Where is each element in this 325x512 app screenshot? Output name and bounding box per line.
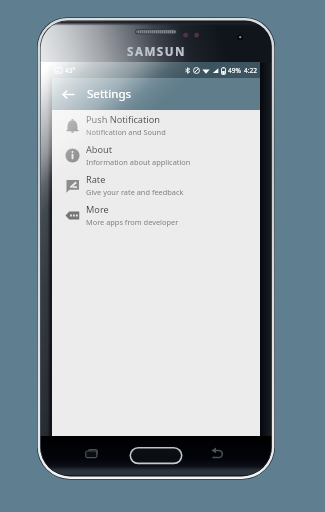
button[interactable]: Rate bbox=[52, 170, 260, 200]
button[interactable]: More bbox=[52, 200, 260, 230]
staticText: Push Notification bbox=[86, 113, 160, 126]
staticText: More apps from developer bbox=[86, 217, 179, 227]
button[interactable]: Back bbox=[56, 82, 80, 106]
staticText: SAMSUNG bbox=[127, 44, 188, 58]
button[interactable]: Push Notification bbox=[52, 110, 260, 140]
staticText: Notification and Sound bbox=[86, 127, 166, 137]
staticText: Rate bbox=[86, 173, 106, 186]
staticText: Information about application bbox=[86, 157, 191, 167]
button[interactable]: About bbox=[52, 140, 260, 170]
staticText: 43° bbox=[65, 66, 76, 75]
staticText: Give your rate and feedback bbox=[86, 187, 184, 197]
staticText: 4:22 bbox=[244, 66, 257, 75]
staticText: More bbox=[86, 203, 109, 216]
staticText: About bbox=[86, 143, 113, 156]
staticText: Settings bbox=[87, 86, 132, 102]
staticText: 49% bbox=[228, 66, 241, 75]
